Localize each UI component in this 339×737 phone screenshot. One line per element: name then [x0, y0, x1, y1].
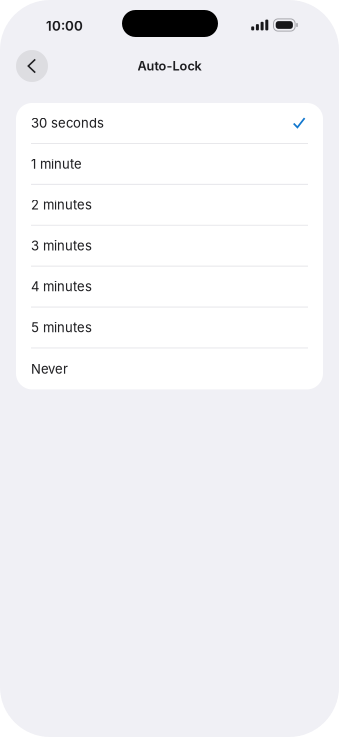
- staticText: 1 minute: [31, 156, 82, 172]
- staticText: 30 seconds: [31, 115, 104, 131]
- button[interactable]: 30 seconds: [16, 103, 323, 144]
- staticText: 10:00: [46, 18, 83, 34]
- staticText: 2 minutes: [31, 197, 92, 213]
- staticText: Auto-Lock: [137, 58, 201, 74]
- staticText: 4 minutes: [31, 279, 92, 294]
- button[interactable]: 3 minutes: [16, 226, 323, 267]
- staticText: Never: [31, 361, 68, 377]
- button[interactable]: 5 minutes: [16, 307, 323, 348]
- button[interactable]: 4 minutes: [16, 267, 323, 307]
- staticText: 3 minutes: [31, 238, 92, 254]
- button[interactable]: Back: [16, 50, 48, 82]
- button[interactable]: 1 minute: [16, 144, 323, 185]
- staticText: 5 minutes: [31, 320, 92, 335]
- button[interactable]: 2 minutes: [16, 185, 323, 226]
- button[interactable]: Never: [16, 348, 323, 389]
